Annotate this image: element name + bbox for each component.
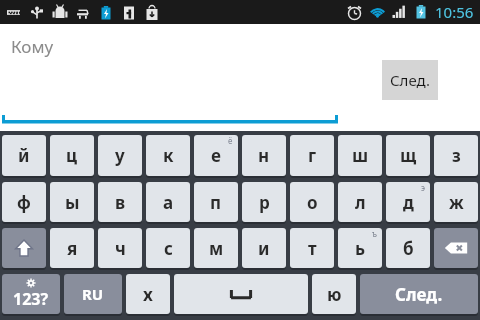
button[interactable]: а xyxy=(146,182,190,222)
staticText: ч xyxy=(115,237,126,260)
staticText: у xyxy=(115,144,125,167)
staticText: д xyxy=(403,191,414,214)
button[interactable]: ц xyxy=(50,135,94,176)
staticText: з xyxy=(452,144,461,167)
staticText: ы xyxy=(65,191,80,214)
button[interactable]: н xyxy=(242,135,286,176)
staticText: ь xyxy=(355,237,366,260)
staticText: щ xyxy=(400,144,417,167)
button[interactable]: ы xyxy=(50,182,94,222)
staticText: в xyxy=(115,191,126,214)
staticText: ф xyxy=(17,191,31,214)
button[interactable]: След. xyxy=(382,60,438,100)
button[interactable]: Space xyxy=(174,274,308,314)
staticText: 123? xyxy=(13,288,49,310)
button[interactable]: я xyxy=(50,228,94,268)
staticText: ю xyxy=(327,283,342,306)
staticText: л xyxy=(355,191,366,214)
staticText: След. xyxy=(390,70,430,90)
staticText: б xyxy=(403,237,414,260)
button[interactable]: у xyxy=(98,135,142,176)
button[interactable]: щ xyxy=(386,135,430,176)
button[interactable]: й xyxy=(2,135,46,176)
button[interactable]: ф xyxy=(2,182,46,222)
staticText: 10:56 xyxy=(435,2,474,22)
button[interactable]: ж xyxy=(434,182,478,222)
staticText: э xyxy=(421,182,425,193)
button[interactable]: р xyxy=(242,182,286,222)
button[interactable]: г xyxy=(290,135,334,176)
button[interactable]: и xyxy=(242,228,286,268)
staticText: я xyxy=(67,237,78,260)
button[interactable]: к xyxy=(146,135,190,176)
button[interactable]: ч xyxy=(98,228,142,268)
button[interactable]: д xyxy=(386,182,430,222)
staticText: ъ xyxy=(372,228,377,239)
staticText: к xyxy=(163,144,174,167)
button[interactable]: б xyxy=(386,228,430,268)
button[interactable]: След. xyxy=(360,274,478,314)
button[interactable]: м xyxy=(194,228,238,268)
staticText: п xyxy=(210,191,222,214)
button[interactable]: п xyxy=(194,182,238,222)
staticText: ц xyxy=(66,144,78,167)
button[interactable]: л xyxy=(338,182,382,222)
staticText: а xyxy=(163,191,174,214)
staticText: ж xyxy=(449,191,464,214)
button[interactable]: ш xyxy=(338,135,382,176)
staticText: ш xyxy=(352,144,369,167)
staticText: е xyxy=(211,144,221,167)
button[interactable]: с xyxy=(146,228,190,268)
staticText: т xyxy=(308,237,317,260)
staticText: х xyxy=(143,283,153,306)
staticText: и xyxy=(258,237,270,260)
button[interactable]: в xyxy=(98,182,142,222)
staticText: След. xyxy=(395,283,443,306)
staticText: RU xyxy=(82,284,104,304)
button[interactable]: Symbols and settings xyxy=(2,274,60,314)
button[interactable]: Backspace xyxy=(434,228,478,268)
button[interactable]: т xyxy=(290,228,334,268)
button[interactable]: е xyxy=(194,135,238,176)
staticText: н xyxy=(258,144,270,167)
staticText: о xyxy=(307,191,318,214)
staticText: Кому xyxy=(11,35,54,58)
button[interactable]: RU xyxy=(64,274,122,314)
button[interactable]: х xyxy=(126,274,170,314)
staticText: ё xyxy=(228,135,233,146)
button[interactable]: ю xyxy=(312,274,356,314)
staticText: м xyxy=(209,237,224,260)
button[interactable]: ь xyxy=(338,228,382,268)
staticText: г xyxy=(308,144,317,167)
button[interactable]: з xyxy=(434,135,478,176)
button[interactable]: Shift xyxy=(2,228,46,268)
button[interactable]: о xyxy=(290,182,334,222)
staticText: й xyxy=(18,144,30,167)
staticText: с xyxy=(164,237,173,260)
staticText: р xyxy=(259,191,270,214)
